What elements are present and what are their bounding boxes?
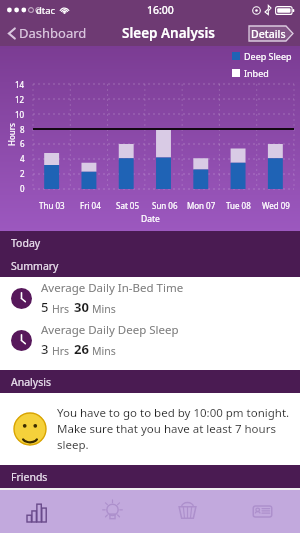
staticText: Thu 03 — [39, 200, 65, 211]
staticText: Sat 05 — [116, 200, 139, 211]
staticText: Fri 04 — [80, 200, 101, 211]
staticText: 26 — [74, 340, 89, 358]
staticText: Inbed — [244, 67, 269, 79]
button[interactable]: Average Daily In-Bed Time — [0, 277, 300, 319]
staticText: Today — [11, 236, 41, 250]
button[interactable]: Statistics — [0, 490, 75, 533]
staticText: 30 — [74, 298, 89, 316]
button[interactable]: You have to go to bed by 10:00 pm tonigh… — [0, 393, 300, 465]
staticText: Summary — [11, 259, 59, 273]
staticText: Average Daily Deep Sleep — [41, 322, 179, 338]
staticText: 8 — [20, 124, 25, 135]
button[interactable]: Dashboard — [6, 21, 89, 45]
staticText: 3 — [41, 340, 49, 358]
staticText: Date — [141, 213, 160, 225]
staticText: Deep Sleep — [244, 50, 292, 62]
staticText: Sun 06 — [152, 200, 178, 211]
staticText: Average Daily In-Bed Time — [41, 280, 184, 296]
button[interactable]: Average Daily Deep Sleep — [0, 319, 300, 361]
staticText: Friends — [11, 470, 48, 484]
staticText: 12 — [15, 94, 25, 105]
staticText: Mins — [92, 344, 116, 358]
button[interactable]: Details — [248, 25, 294, 42]
staticText: Mon 07 — [187, 200, 216, 211]
staticText: Hrs — [52, 302, 70, 316]
staticText: 14 — [15, 79, 25, 90]
staticText: Dashboard — [19, 24, 87, 42]
staticText: Tue 08 — [226, 200, 251, 211]
staticText: 16:00 — [147, 3, 174, 17]
button[interactable]: Tips — [75, 490, 150, 533]
staticText: 4 — [20, 153, 25, 164]
staticText: Wed 09 — [262, 200, 290, 211]
staticText: Mins — [92, 302, 116, 316]
button[interactable]: Profile — [225, 490, 300, 533]
staticText: Sleep Analysis — [122, 24, 215, 42]
staticText: 5 — [41, 298, 49, 316]
staticText: dtac — [36, 4, 56, 17]
staticText: 10 — [15, 109, 25, 120]
staticText: 0 — [20, 183, 25, 194]
button[interactable]: Basket — [150, 490, 225, 533]
staticText: Analysis — [11, 375, 51, 389]
staticText: Hours — [6, 123, 17, 146]
staticText: Details — [251, 27, 286, 41]
staticText: 2 — [20, 168, 25, 179]
staticText: You have to go to bed by 10:00 pm tonigh… — [57, 405, 290, 453]
staticText: 6 — [20, 138, 25, 149]
staticText: Hrs — [52, 344, 70, 358]
